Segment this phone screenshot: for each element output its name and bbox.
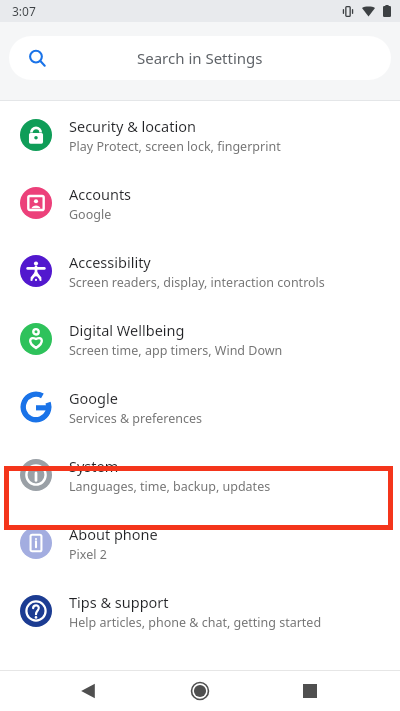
staticText: About phone: [69, 524, 158, 544]
button[interactable]: Accessibility: [0, 237, 400, 305]
staticText: Screen time, app timers, Wind Down: [69, 342, 283, 359]
staticText: Tips & support: [69, 592, 169, 612]
button[interactable]: Recent apps: [290, 671, 330, 711]
button[interactable]: Back: [68, 671, 108, 711]
button[interactable]: About phone: [0, 509, 400, 577]
staticText: Services & preferences: [69, 410, 203, 427]
staticText: Security & location: [69, 116, 196, 136]
staticText: Google: [69, 206, 112, 223]
button[interactable]: Search in Settings: [9, 36, 391, 80]
button[interactable]: Accounts: [0, 169, 400, 237]
staticText: Languages, time, backup, updates: [69, 478, 271, 495]
staticText: System: [69, 456, 119, 476]
button[interactable]: Google: [0, 373, 400, 441]
staticText: Search in Settings: [137, 48, 263, 68]
button[interactable]: Security & location: [0, 101, 400, 169]
staticText: Help articles, phone & chat, getting sta…: [69, 614, 322, 631]
staticText: Play Protect, screen lock, fingerprint: [69, 138, 281, 155]
button[interactable]: Digital Wellbeing: [0, 305, 400, 373]
staticText: Accessibility: [69, 252, 151, 272]
staticText: Accounts: [69, 184, 132, 204]
staticText: Google: [69, 388, 118, 408]
button[interactable]: System: [0, 441, 400, 509]
button[interactable]: Tips & support: [0, 577, 400, 645]
staticText: Pixel 2: [69, 546, 107, 563]
staticText: Digital Wellbeing: [69, 320, 185, 340]
button[interactable]: Home: [180, 671, 220, 711]
staticText: Screen readers, display, interaction con…: [69, 274, 325, 291]
staticText: 3:07: [12, 3, 36, 19]
